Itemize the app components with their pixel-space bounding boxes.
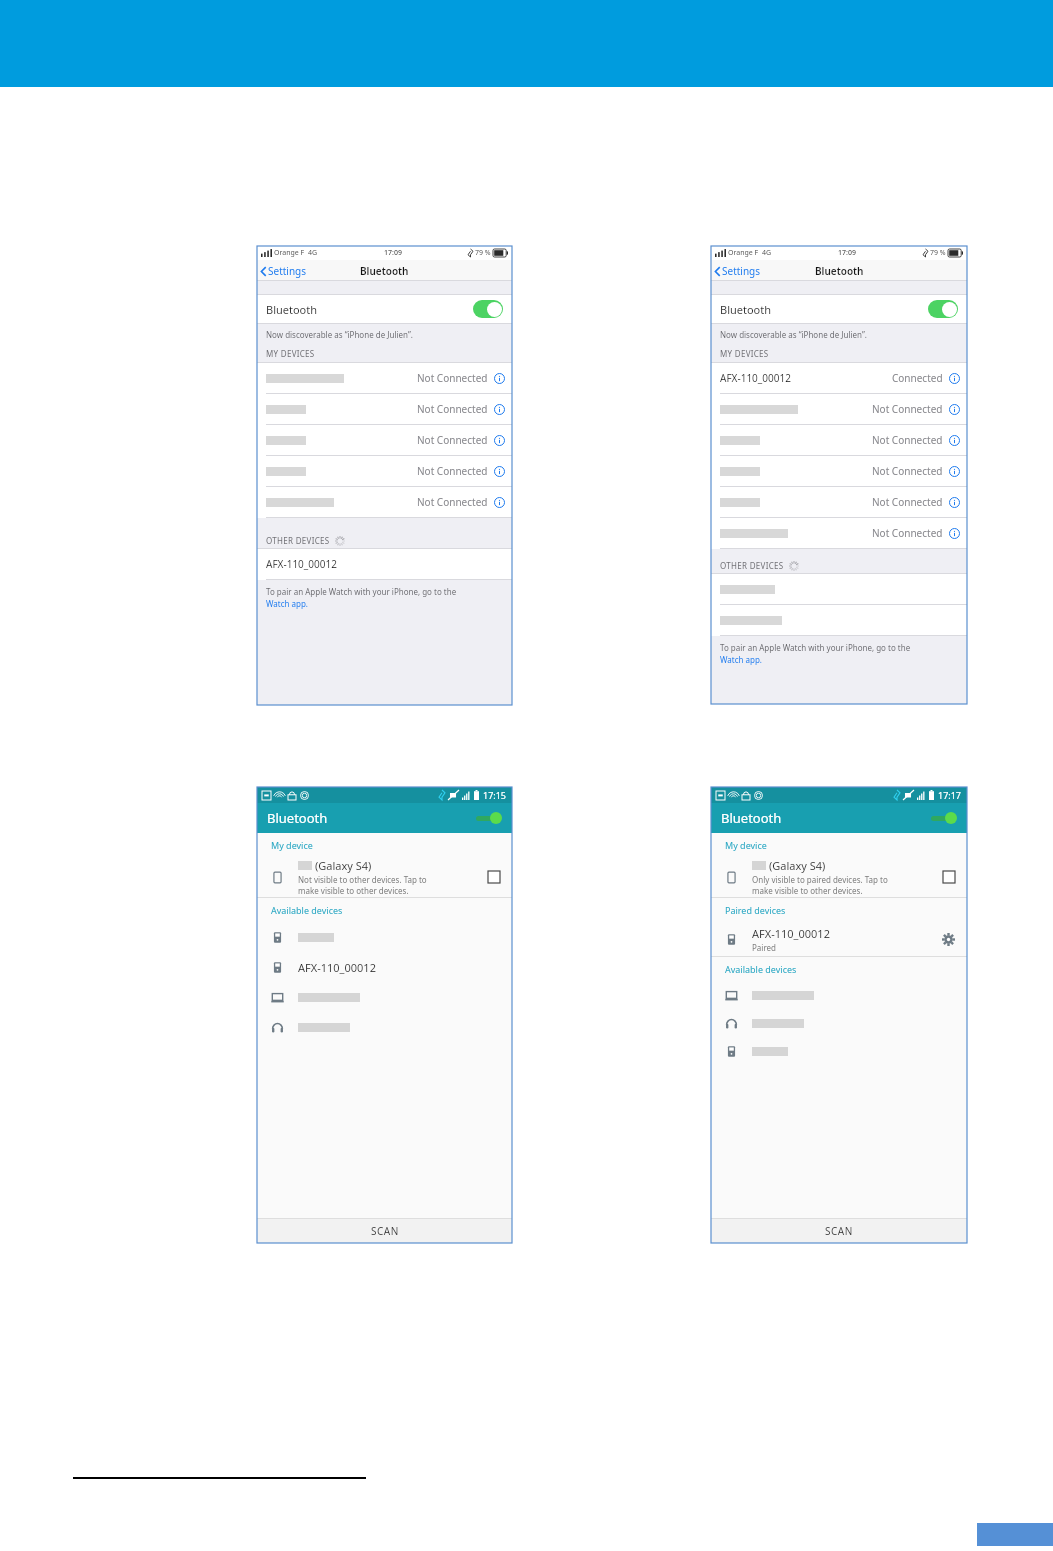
staticText: Settings [268, 264, 307, 278]
staticText: 79 % [930, 248, 946, 258]
staticText: Not Connected [417, 371, 488, 385]
staticText: Paired [752, 942, 776, 953]
staticText: SCAN [825, 1224, 853, 1238]
button[interactable]: Not Connected [711, 425, 967, 455]
staticText: Now discoverable as “iPhone de Julien”. [266, 329, 413, 340]
button[interactable]: Not Connected [257, 425, 512, 455]
button[interactable]: (Galaxy S4) [711, 857, 967, 897]
staticText: 17:17 [938, 789, 962, 801]
staticText: make visible to other devices. [298, 885, 409, 896]
button[interactable]: Bluetooth on/off [931, 812, 957, 824]
staticText: OTHER DEVICES [720, 560, 784, 571]
staticText: 79 % [475, 248, 491, 258]
button[interactable]: Settings [714, 264, 761, 278]
button[interactable]: Not Connected [711, 456, 967, 486]
button[interactable] [711, 605, 967, 635]
button[interactable]: AFX-110_00012 [711, 922, 967, 956]
button[interactable]: Bluetooth [711, 295, 967, 323]
button[interactable]: AFX-110_00012 [711, 363, 967, 393]
staticText: Not Connected [872, 433, 943, 447]
staticText: (Galaxy S4) [315, 858, 372, 873]
staticText: Orange F [274, 248, 305, 258]
staticText: Available devices [271, 904, 343, 916]
staticText: Orange F [728, 248, 759, 258]
button[interactable] [711, 1037, 967, 1065]
button[interactable]: Watch app. [720, 654, 762, 665]
staticText: 17:09 [838, 248, 856, 258]
button[interactable]: Not Connected [711, 394, 967, 424]
button[interactable]: Not Connected [257, 394, 512, 424]
button[interactable]: Settings [260, 264, 307, 278]
staticText: My device [271, 839, 313, 851]
button[interactable]: Device settings [942, 933, 955, 946]
button[interactable] [711, 1009, 967, 1037]
button[interactable]: Visibility checkbox [488, 871, 500, 883]
staticText: Bluetooth [815, 264, 864, 278]
button[interactable]: Bluetooth [257, 295, 512, 323]
button[interactable]: Watch app. [266, 598, 308, 609]
staticText: MY DEVICES [720, 348, 769, 359]
staticText: Not visible to other devices. Tap to [298, 874, 427, 885]
button[interactable]: AFX-110_00012 [257, 952, 512, 982]
staticText: Bluetooth [360, 264, 409, 278]
staticText: AFX-110_00012 [752, 926, 830, 941]
button[interactable]: Visibility checkbox [943, 871, 955, 883]
staticText: 4G [308, 248, 318, 258]
staticText: Paired devices [725, 904, 786, 916]
staticText: Not Connected [872, 464, 943, 478]
staticText: Not Connected [872, 526, 943, 540]
staticText: Settings [722, 264, 761, 278]
button[interactable]: Not Connected [257, 456, 512, 486]
staticText: Not Connected [417, 433, 488, 447]
staticText: AFX-110_00012 [298, 960, 376, 975]
button[interactable] [257, 982, 512, 1012]
staticText: My device [725, 839, 767, 851]
staticText: Available devices [725, 963, 797, 975]
button[interactable] [257, 922, 512, 952]
staticText: AFX-110_00012 [720, 371, 791, 385]
staticText: Not Connected [417, 495, 488, 509]
staticText: To pair an Apple Watch with your iPhone,… [266, 586, 457, 597]
staticText: (Galaxy S4) [769, 858, 826, 873]
staticText: 17:09 [384, 248, 402, 258]
staticText: 17:15 [483, 789, 507, 801]
staticText: Not Connected [417, 464, 488, 478]
button[interactable]: SCAN [711, 1219, 967, 1243]
staticText: Not Connected [872, 495, 943, 509]
button[interactable]: SCAN [257, 1219, 512, 1243]
staticText: make visible to other devices. [752, 885, 863, 896]
button[interactable]: Not Connected [711, 518, 967, 548]
staticText: Only visible to paired devices. Tap to [752, 874, 888, 885]
staticText: OTHER DEVICES [266, 535, 330, 546]
button[interactable] [711, 574, 967, 604]
staticText: Not Connected [417, 402, 488, 416]
staticText: Bluetooth [721, 809, 782, 827]
staticText: Bluetooth [266, 302, 318, 317]
button[interactable]: Bluetooth on/off [476, 812, 502, 824]
staticText: AFX-110_00012 [266, 557, 337, 571]
staticText: Connected [892, 371, 943, 385]
staticText: 4G [762, 248, 772, 258]
staticText: SCAN [371, 1224, 399, 1238]
staticText: MY DEVICES [266, 348, 315, 359]
staticText: Now discoverable as “iPhone de Julien”. [720, 329, 867, 340]
staticText: To pair an Apple Watch with your iPhone,… [720, 642, 911, 653]
button[interactable]: Not Connected [711, 487, 967, 517]
button[interactable]: Not Connected [257, 487, 512, 517]
button[interactable]: (Galaxy S4) [257, 857, 512, 897]
staticText: Bluetooth [720, 302, 772, 317]
staticText: Bluetooth [267, 809, 328, 827]
button[interactable]: Not Connected [257, 363, 512, 393]
button[interactable] [257, 1012, 512, 1042]
button[interactable]: AFX-110_00012 [257, 549, 512, 579]
staticText: Not Connected [872, 402, 943, 416]
button[interactable] [711, 981, 967, 1009]
